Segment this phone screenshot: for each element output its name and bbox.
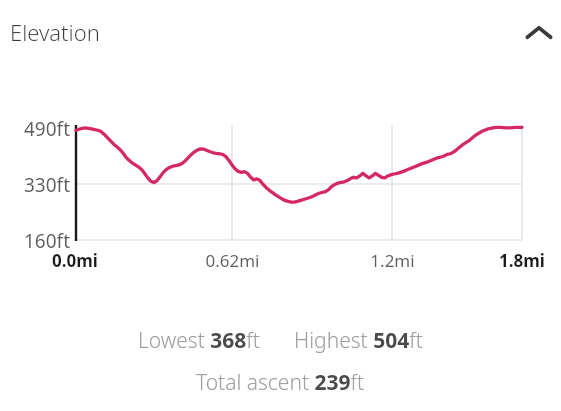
staticText: 0.62mi <box>205 249 260 272</box>
button[interactable]: Collapse elevation section <box>518 11 560 53</box>
staticText: 330ft <box>24 172 70 198</box>
staticText: 1.8mi <box>499 249 545 272</box>
staticText: 160ft <box>24 228 70 254</box>
staticText: Highest 504ft <box>294 326 423 355</box>
staticText: Lowest 368ft <box>138 326 260 355</box>
staticText: Elevation <box>10 17 100 47</box>
staticText: 1.2mi <box>370 249 415 272</box>
staticText: 0.0mi <box>52 249 98 272</box>
staticText: Total ascent 239ft <box>196 368 365 397</box>
staticText: 490ft <box>24 116 70 142</box>
